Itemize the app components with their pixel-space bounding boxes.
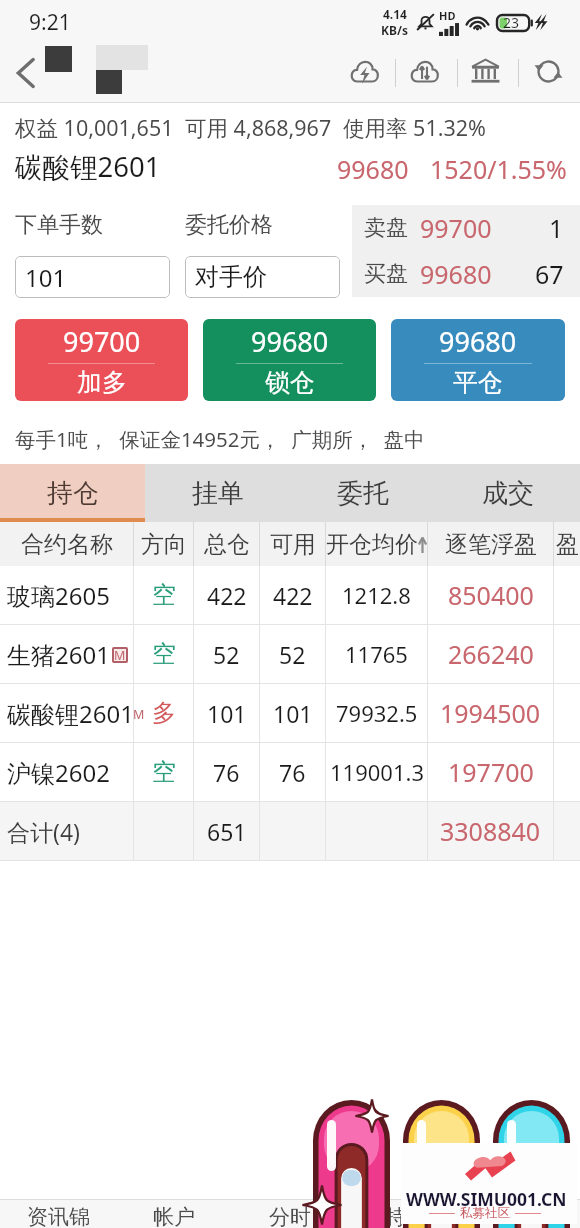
staticText: 99680	[420, 257, 492, 291]
staticText: 422	[273, 580, 313, 611]
staticText: 空	[152, 580, 176, 610]
staticText: 分时	[269, 1204, 311, 1228]
staticText: 合约名称	[21, 530, 113, 559]
staticText: 碳酸锂2601	[15, 148, 161, 186]
staticText: 850400	[448, 578, 534, 612]
button[interactable]: 帐户	[116, 1200, 232, 1228]
button[interactable]: 99680	[203, 319, 376, 401]
staticText: 锁仓	[265, 367, 315, 398]
staticText: 99680	[439, 323, 517, 360]
staticText: 266240	[448, 637, 534, 671]
staticText: 1994500	[440, 696, 541, 730]
staticText: 119001.3	[330, 757, 424, 787]
staticText: 可用 4,868,967	[185, 113, 332, 142]
staticText: 3308840	[440, 814, 541, 848]
button[interactable]: 101	[15, 256, 170, 298]
staticText: 合计(4)	[7, 816, 80, 847]
staticText: 79932.5	[336, 698, 418, 728]
button[interactable]: 挂单	[145, 464, 290, 522]
staticText: 权益 10,001,651	[15, 113, 174, 142]
button[interactable]: 99700	[15, 319, 188, 401]
button[interactable]: 成交	[435, 464, 580, 522]
staticText: 101	[207, 698, 247, 729]
staticText: 9:21	[29, 8, 71, 37]
staticText: 私募社区	[460, 1205, 510, 1221]
staticText: 76	[213, 757, 240, 788]
staticText: 52	[213, 639, 240, 670]
button[interactable]: 沪镍2602	[0, 743, 580, 801]
button[interactable]: 玻璃2605	[0, 566, 580, 624]
staticText: M	[114, 647, 126, 663]
staticText: 23	[503, 13, 520, 32]
staticText: 总仓	[204, 530, 250, 559]
button[interactable]: Deposit	[337, 46, 391, 100]
staticText: 197700	[448, 755, 534, 789]
button[interactable]: 委托	[290, 464, 435, 522]
staticText: 1	[549, 211, 564, 245]
staticText: 平仓	[453, 367, 503, 398]
staticText: 67	[535, 257, 564, 291]
button[interactable]: 生猪2601	[0, 625, 580, 683]
staticText: 空	[152, 639, 176, 669]
button[interactable]: 持仓	[0, 464, 145, 522]
staticText: 方向	[141, 530, 187, 559]
staticText: 76	[279, 757, 306, 788]
staticText: 52	[279, 639, 306, 670]
button[interactable]: 分时	[232, 1200, 348, 1228]
staticText: 交易	[501, 1204, 543, 1228]
staticText: 碳酸锂2601	[7, 697, 133, 730]
button[interactable]: Transfer	[397, 46, 451, 100]
staticText: WWW.SIMU001.CN	[406, 1187, 567, 1211]
staticText: 委托价格	[185, 211, 273, 239]
staticText: 下单手数	[15, 211, 103, 239]
staticText: 每手1吨， 保证金14952元， 广期所， 盘中	[15, 425, 425, 453]
staticText: 101	[273, 698, 313, 729]
staticText: 沪镍2602	[7, 756, 110, 789]
staticText: 99700	[63, 323, 141, 360]
staticText: 成交	[482, 477, 534, 510]
button[interactable]: Bank	[458, 46, 512, 100]
staticText: 开仓均价	[326, 530, 418, 559]
staticText: 逐笔浮盈	[445, 530, 537, 559]
staticText: 多	[152, 698, 176, 728]
staticText: 11765	[345, 639, 408, 669]
button[interactable]: 持仓	[348, 1200, 464, 1228]
staticText: 422	[207, 580, 247, 611]
staticText: 生猪2601	[7, 638, 110, 671]
staticText: 持仓	[47, 477, 99, 510]
staticText: 委托	[337, 477, 389, 510]
button[interactable]: 交易	[464, 1200, 580, 1228]
staticText: 帐户	[153, 1204, 195, 1228]
button[interactable]: Refresh	[521, 46, 575, 100]
button[interactable]: Back	[3, 50, 49, 96]
staticText: 101	[25, 261, 67, 294]
staticText: 空	[152, 757, 176, 787]
staticText: 1520/1.55%	[430, 152, 567, 186]
staticText: 99700	[420, 211, 492, 245]
staticText: 持仓	[385, 1204, 427, 1228]
staticText: 4.14	[383, 6, 407, 22]
staticText: 使用率 51.32%	[343, 113, 486, 142]
staticText: 99680	[251, 323, 329, 360]
staticText: 99680	[337, 152, 409, 186]
button[interactable]: 99680	[391, 319, 565, 401]
button[interactable]: 对手价	[185, 256, 340, 298]
staticText: 盈	[556, 530, 579, 559]
staticText: 玻璃2605	[7, 579, 110, 612]
button[interactable]: 资讯锦	[0, 1200, 116, 1228]
button[interactable]: 碳酸锂2601	[0, 684, 580, 742]
staticText: 651	[207, 816, 247, 847]
staticText: 加多	[77, 367, 127, 398]
staticText: 资讯锦	[27, 1204, 90, 1228]
staticText: 买盘	[364, 260, 408, 288]
staticText: 卖盘	[364, 214, 408, 242]
staticText: 挂单	[192, 477, 244, 510]
staticText: KB/s	[381, 22, 408, 38]
staticText: HD	[439, 8, 456, 23]
staticText: 对手价	[195, 262, 267, 292]
staticText: 1212.8	[342, 580, 411, 610]
staticText: 可用	[270, 530, 316, 559]
